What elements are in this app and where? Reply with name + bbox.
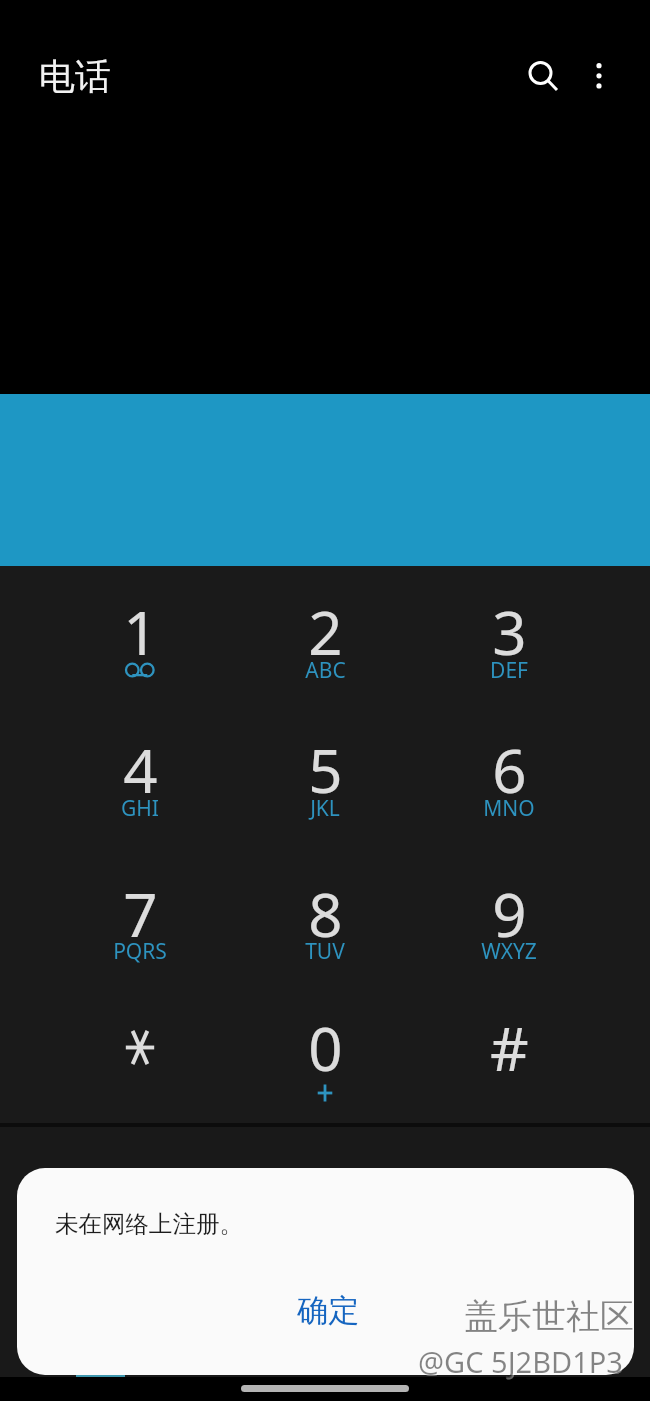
button[interactable]: 1	[48, 566, 232, 705]
staticText: @GC 5J2BD1P3	[418, 1342, 623, 1381]
staticText: 9	[492, 873, 527, 955]
staticText: DEF	[490, 656, 528, 685]
staticText: WXYZ	[481, 937, 537, 966]
staticText: 电话	[39, 54, 111, 99]
button[interactable]: 0	[233, 984, 417, 1123]
staticText: 4	[123, 729, 158, 811]
button[interactable]	[48, 984, 232, 1123]
staticText: 2	[308, 591, 343, 673]
staticText: 确定	[297, 1291, 359, 1330]
staticText: 6	[492, 729, 527, 811]
button[interactable]: 6	[417, 705, 601, 844]
staticText: @GC 5J2BD1P3	[419, 1343, 624, 1382]
staticText: JKL	[310, 794, 340, 823]
staticText: 7	[123, 873, 158, 955]
staticText: GHI	[121, 794, 159, 823]
button[interactable]: 8	[233, 845, 417, 984]
staticText: ABC	[305, 656, 346, 685]
staticText: 5	[308, 729, 343, 811]
button[interactable]: Search	[513, 47, 569, 103]
staticText: 1	[123, 591, 158, 673]
button[interactable]: 5	[233, 705, 417, 844]
staticText: 0	[308, 1007, 343, 1089]
button[interactable]: 3	[417, 566, 601, 705]
staticText: TUV	[305, 937, 345, 966]
staticText: 8	[308, 873, 343, 955]
staticText: 盖乐世社区	[465, 1296, 635, 1339]
button[interactable]: 2	[233, 566, 417, 705]
button[interactable]: 确定	[248, 1270, 408, 1350]
button[interactable]: 9	[417, 845, 601, 984]
staticText: 盖乐世社区	[464, 1295, 634, 1338]
button[interactable]: 7	[48, 845, 232, 984]
staticText: #	[490, 1007, 529, 1089]
staticText: 3	[492, 591, 527, 673]
staticText: PQRS	[113, 937, 167, 966]
button[interactable]: More options	[571, 47, 627, 103]
staticText: 未在网络上注册。	[55, 1209, 243, 1239]
button[interactable]: #	[417, 984, 601, 1123]
staticText: MNO	[483, 794, 535, 823]
button[interactable]: 4	[48, 705, 232, 844]
